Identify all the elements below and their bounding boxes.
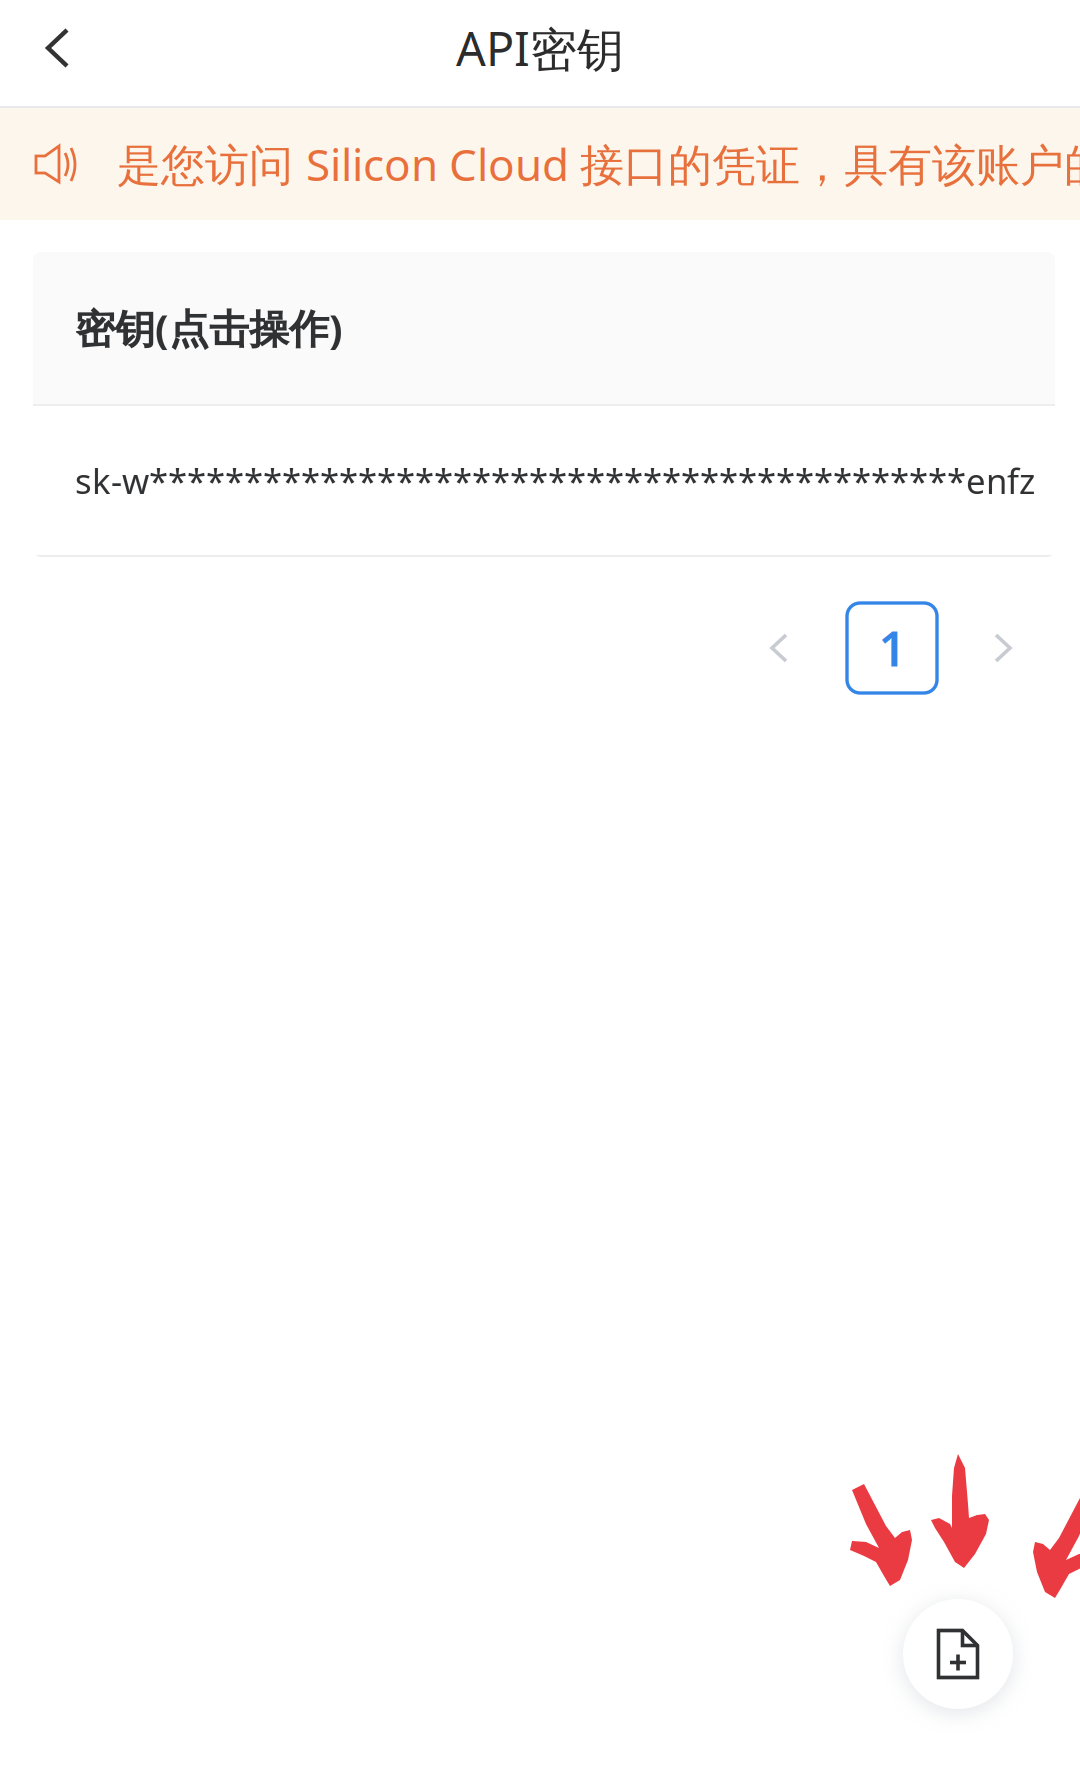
staticText: 是您访问 Silicon Cloud 接口的凭证，具有该账户的 bbox=[117, 135, 1080, 193]
staticText: API密钥 bbox=[456, 17, 624, 79]
button[interactable]: Next page bbox=[937, 603, 1069, 693]
staticText: sk-w************************************… bbox=[75, 457, 1035, 503]
staticText: 1 bbox=[878, 616, 905, 680]
staticText: 密钥(点击操作) bbox=[75, 301, 343, 354]
button[interactable]: Previous page bbox=[711, 603, 847, 693]
button[interactable]: New API key bbox=[903, 1599, 1013, 1709]
button[interactable]: Back bbox=[0, 0, 120, 106]
button[interactable]: 1 bbox=[847, 603, 937, 693]
button[interactable]: 密钥(点击操作) bbox=[33, 252, 1055, 404]
button[interactable]: sk-w************************************… bbox=[33, 406, 1055, 555]
